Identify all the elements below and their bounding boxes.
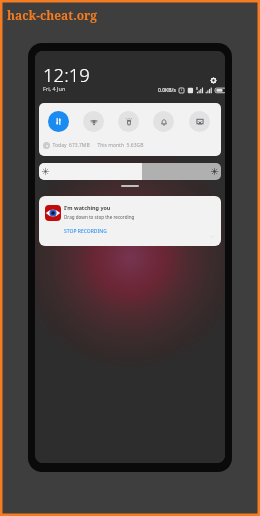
button[interactable]: STOP RECORDING bbox=[64, 228, 107, 235]
staticText: Today 673.7MB This month 5.63GB bbox=[50, 142, 144, 149]
button[interactable]: Settings bbox=[209, 76, 217, 84]
button[interactable]: Wi-Fi bbox=[83, 111, 104, 132]
button[interactable]: Mobile data bbox=[48, 111, 69, 132]
button[interactable]: Brightness bbox=[39, 163, 221, 180]
button[interactable]: Cast screen bbox=[189, 111, 210, 132]
staticText: I'm watching you bbox=[64, 204, 111, 211]
staticText: 0.0KB/s bbox=[158, 87, 176, 94]
button[interactable]: Flashlight bbox=[118, 111, 139, 132]
staticText: hack-cheat.org bbox=[7, 7, 98, 23]
button[interactable]: Do not disturb bbox=[153, 111, 174, 132]
staticText: 12:19 bbox=[43, 62, 90, 87]
staticText: Fri, 4 Jun bbox=[43, 85, 66, 92]
staticText: STOP RECORDING bbox=[64, 228, 107, 235]
staticText: Drag down to stop the recording bbox=[64, 214, 135, 220]
button[interactable]: I'm watching you bbox=[39, 196, 221, 246]
